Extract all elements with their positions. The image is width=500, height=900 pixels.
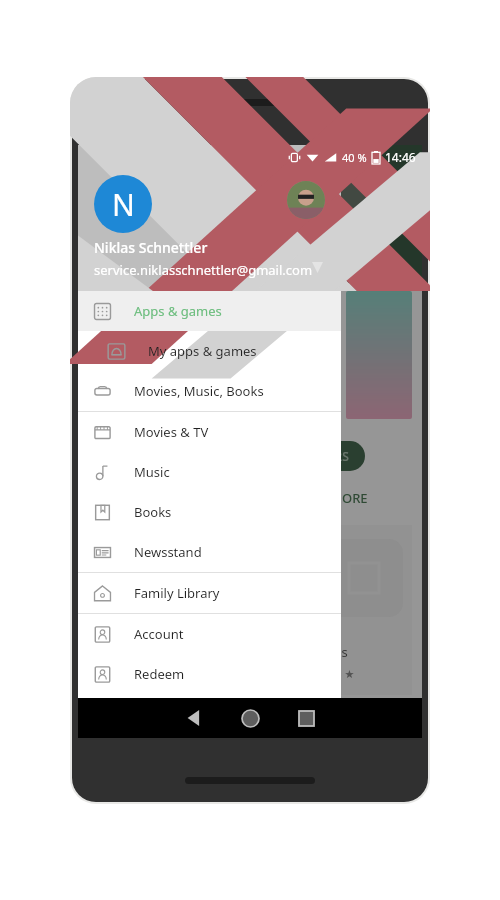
button[interactable]: Recent apps xyxy=(278,698,334,738)
staticText: Movies & TV xyxy=(134,423,209,441)
button[interactable]: Home xyxy=(222,698,278,738)
staticText: Newsstand xyxy=(134,543,202,561)
staticText: Books xyxy=(134,503,172,521)
button[interactable]: Res xyxy=(316,525,412,695)
staticText: Movies, Music, Books xyxy=(134,382,264,400)
staticText: Redeem xyxy=(134,665,185,683)
staticText: My apps & games xyxy=(148,342,257,360)
staticText: Res xyxy=(326,643,348,661)
staticText: MORE xyxy=(330,489,368,507)
button[interactable]: Movies, Music, Books xyxy=(78,371,341,411)
button[interactable]: Newsstand xyxy=(78,532,341,572)
button[interactable]: My apps & games xyxy=(78,331,341,371)
staticText: 40 % xyxy=(342,150,367,165)
button[interactable]: Redeem xyxy=(78,654,341,694)
button[interactable]: Books xyxy=(78,492,341,532)
staticText: 4,6 ★ xyxy=(326,666,355,681)
staticText: APPS, GAMES, MOVIES, MUSIC, BOOKS xyxy=(90,237,346,255)
button[interactable]: Movies & TV xyxy=(78,412,341,452)
button[interactable]: Expand accounts xyxy=(307,257,327,277)
button[interactable]: Family Library xyxy=(78,573,341,613)
button[interactable]: Apps & games xyxy=(78,291,341,331)
button[interactable]: TOP CHARTS xyxy=(86,441,190,471)
staticText: 4,3 ★ xyxy=(98,666,127,681)
staticText: Family Library xyxy=(134,584,220,602)
staticText: 14:46 xyxy=(385,149,416,165)
button[interactable]: Music xyxy=(78,452,341,492)
button[interactable] xyxy=(202,525,306,695)
staticText: Music xyxy=(134,463,170,481)
button[interactable]: N xyxy=(78,145,341,291)
button[interactable]: Back xyxy=(166,698,222,738)
staticText: N xyxy=(112,184,135,225)
staticText: Niklas Schnettler xyxy=(94,238,208,257)
button[interactable]: Tasks xyxy=(88,525,192,695)
button[interactable]: Account xyxy=(78,614,341,654)
staticText: EDITORS xyxy=(299,448,349,464)
button[interactable]: Switch account xyxy=(287,181,325,219)
staticText: service.niklasschnettler@gmail.com xyxy=(94,261,313,279)
staticText: Account xyxy=(134,625,184,643)
staticText: Apps & games xyxy=(134,302,222,320)
button[interactable]: EDITORS xyxy=(283,441,365,471)
